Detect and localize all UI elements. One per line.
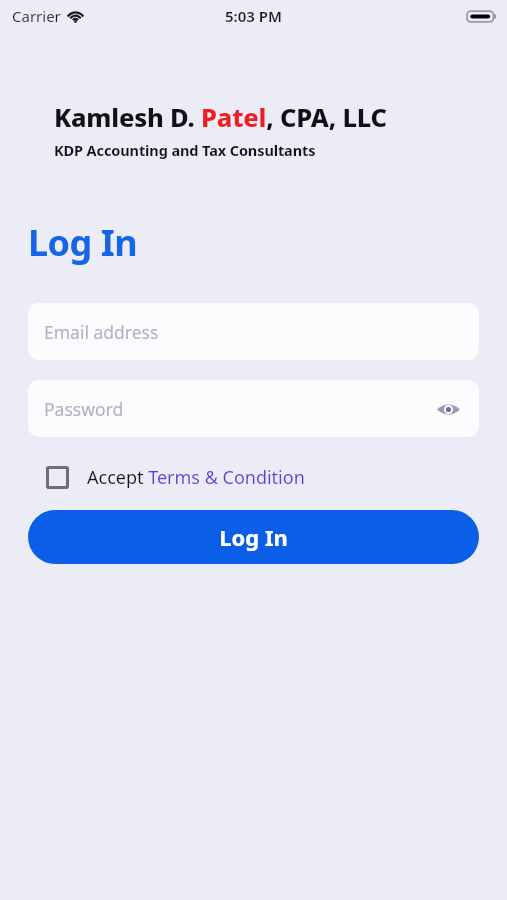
staticText: 5:03 PM (225, 6, 282, 26)
button[interactable]: Show password (433, 394, 463, 424)
staticText: Carrier (12, 6, 61, 26)
button[interactable]: Log In (28, 510, 479, 564)
staticText: Accept Terms & Condition (87, 465, 305, 490)
button[interactable]: Email address (28, 303, 479, 360)
button[interactable]: Accept Terms & Condition (28, 465, 309, 490)
staticText: KDP Accounting and Tax Consultants (54, 140, 316, 160)
staticText: Log In (28, 218, 138, 267)
staticText: Password (44, 397, 124, 421)
staticText: Log In (219, 522, 288, 552)
staticText: Email address (44, 320, 159, 344)
button[interactable]: Password (28, 380, 479, 437)
staticText: Kamlesh D. Patel, CPA, LLC (54, 100, 387, 135)
